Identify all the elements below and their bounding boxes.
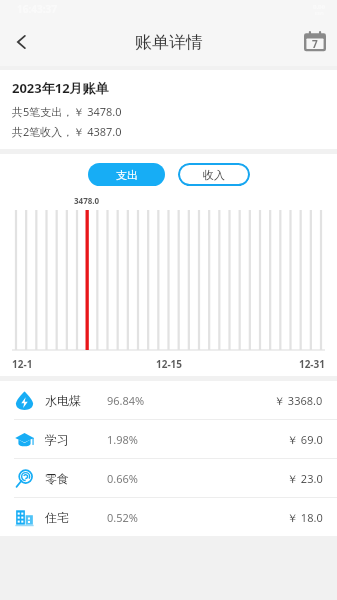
button[interactable]: Calendar <box>293 20 337 64</box>
button[interactable]: 支出 <box>88 163 165 186</box>
button[interactable]: 学习 <box>0 420 337 458</box>
button[interactable]: 住宅 <box>0 498 337 536</box>
staticText: 2023年12月账单 <box>12 79 109 97</box>
staticText: ￥ 3368.0 <box>274 393 323 408</box>
staticText: 12-31 <box>221 357 325 371</box>
staticText: 3478.0 <box>74 195 100 206</box>
staticText: 0.52% <box>107 510 287 525</box>
staticText: ￥ 23.0 <box>287 471 323 486</box>
staticText: 学习 <box>45 432 107 447</box>
staticText: 1.98% <box>107 432 287 447</box>
button[interactable]: Back <box>0 20 44 64</box>
staticText: 0.66% <box>107 471 287 486</box>
staticText: 收入 <box>203 168 225 182</box>
button[interactable]: 零食 <box>0 459 337 497</box>
staticText: 账单详情 <box>135 32 203 53</box>
staticText: ￥ 69.0 <box>287 432 323 447</box>
staticText: ￥ 18.0 <box>287 510 323 525</box>
staticText: 96.84% <box>107 393 274 408</box>
staticText: 住宅 <box>45 510 107 525</box>
staticText: 水电煤 <box>45 393 107 408</box>
staticText: 共5笔支出，￥ 3478.0 <box>12 104 122 119</box>
staticText: 12-15 <box>117 357 221 371</box>
staticText: 7 <box>312 37 318 51</box>
staticText: 支出 <box>116 168 138 182</box>
staticText: 共2笔收入，￥ 4387.0 <box>12 124 122 139</box>
staticText: 12-1 <box>12 357 117 371</box>
button[interactable]: 收入 <box>178 163 250 186</box>
button[interactable]: 水电煤 <box>0 381 337 419</box>
staticText: 零食 <box>45 471 107 486</box>
